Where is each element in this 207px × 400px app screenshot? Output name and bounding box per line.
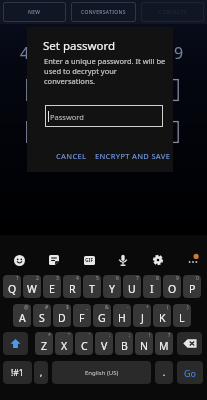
- staticText: ?: [168, 332, 171, 339]
- button[interactable]: 2: [23, 275, 41, 298]
- button[interactable]: 9: [163, 275, 181, 298]
- staticText: X: [61, 339, 68, 353]
- button[interactable]: 6: [103, 275, 121, 298]
- button[interactable]: Voice input: [110, 247, 136, 273]
- button[interactable]: #: [33, 304, 51, 327]
- staticText: J: [141, 311, 144, 325]
- staticText: +: [146, 304, 149, 311]
- staticText: D: [58, 311, 66, 325]
- staticText: ): [187, 304, 189, 311]
- staticText: Enter a unique password. It will be used…: [44, 56, 170, 86]
- button[interactable]: 5: [83, 275, 101, 298]
- staticText: 6: [116, 275, 119, 282]
- staticText: _: [86, 304, 89, 311]
- button[interactable]: NEW: [3, 2, 66, 22]
- staticText: N: [140, 339, 148, 353]
- staticText: ": [68, 332, 71, 339]
- button[interactable]: More options: [180, 247, 206, 273]
- staticText: Y: [109, 282, 115, 296]
- staticText: 9: [174, 42, 184, 64]
- button[interactable]: CONTACTS: [141, 2, 204, 22]
- button[interactable]: CONVERSATIONS: [71, 2, 136, 22]
- staticText: R: [69, 282, 76, 296]
- staticText: M: [159, 339, 169, 353]
- staticText: :: [109, 332, 111, 339]
- button[interactable]: Password: [45, 105, 163, 127]
- staticText: T: [89, 282, 95, 296]
- staticText: .: [163, 367, 166, 378]
- staticText: 8: [156, 275, 159, 282]
- button[interactable]: ENCRYPT AND SAVE: [91, 149, 175, 163]
- button[interactable]: ": [55, 332, 73, 355]
- staticText: E: [49, 282, 55, 296]
- button[interactable]: ': [75, 332, 93, 355]
- staticText: S: [39, 311, 45, 325]
- button[interactable]: 7: [123, 275, 141, 298]
- button[interactable]: 3: [43, 275, 61, 298]
- button[interactable]: 1: [3, 275, 21, 298]
- button[interactable]: (: [153, 304, 171, 327]
- button[interactable]: ,: [34, 361, 48, 384]
- staticText: Go: [184, 367, 196, 379]
- staticText: CANCEL: [56, 151, 87, 161]
- button[interactable]: 8: [143, 275, 161, 298]
- staticText: NEW: [28, 9, 41, 16]
- staticText: 4: [20, 42, 30, 64]
- staticText: $: [66, 304, 69, 311]
- staticText: 3: [56, 275, 59, 282]
- staticText: ;: [129, 332, 131, 339]
- staticText: Q: [8, 282, 17, 296]
- staticText: CONTACTS: [159, 9, 187, 16]
- staticText: U: [128, 282, 136, 296]
- staticText: 0: [196, 275, 199, 282]
- button[interactable]: -: [113, 304, 131, 327]
- button[interactable]: &: [93, 304, 111, 327]
- button[interactable]: ?: [155, 332, 173, 355]
- button[interactable]: 0: [183, 275, 201, 298]
- staticText: 7: [136, 275, 139, 282]
- staticText: !#1: [11, 367, 24, 379]
- staticText: H: [118, 311, 126, 325]
- button[interactable]: Go: [177, 361, 203, 384]
- staticText: !: [149, 332, 151, 339]
- staticText: GIF: [85, 257, 94, 264]
- staticText: 1: [16, 275, 19, 282]
- staticText: Password: [50, 112, 84, 122]
- staticText: Set password: [43, 38, 116, 54]
- staticText: ': [89, 332, 91, 339]
- staticText: I: [150, 282, 154, 296]
- button[interactable]: Backspace: [177, 332, 202, 355]
- staticText: -: [127, 304, 129, 311]
- staticText: @: [24, 304, 29, 311]
- button[interactable]: Stickers: [41, 247, 67, 273]
- button[interactable]: CANCEL: [52, 149, 91, 163]
- button[interactable]: *: [35, 332, 53, 355]
- staticText: Z: [41, 339, 48, 353]
- staticText: 9: [176, 275, 179, 282]
- button[interactable]: _: [73, 304, 91, 327]
- button[interactable]: @: [13, 304, 31, 327]
- button[interactable]: .: [155, 361, 173, 384]
- staticText: F: [79, 311, 85, 325]
- button[interactable]: Settings: [145, 247, 171, 273]
- button[interactable]: ;: [115, 332, 133, 355]
- staticText: 5: [96, 275, 99, 282]
- staticText: *: [48, 332, 51, 339]
- button[interactable]: !#1: [3, 361, 32, 384]
- button[interactable]: !: [135, 332, 153, 355]
- staticText: V: [101, 339, 108, 353]
- staticText: B: [121, 339, 128, 353]
- button[interactable]: Emoji: [6, 247, 32, 273]
- staticText: ENCRYPT AND SAVE: [95, 151, 171, 161]
- button[interactable]: ): [173, 304, 191, 327]
- button[interactable]: 4: [63, 275, 81, 298]
- staticText: K: [159, 311, 166, 325]
- button[interactable]: GIF keyboard: [76, 247, 102, 273]
- button[interactable]: $: [53, 304, 71, 327]
- button[interactable]: :: [95, 332, 113, 355]
- button[interactable]: +: [133, 304, 151, 327]
- staticText: O: [168, 282, 177, 296]
- button[interactable]: Shift: [3, 332, 28, 355]
- button[interactable]: English (US): [52, 361, 151, 384]
- staticText: 2: [36, 275, 39, 282]
